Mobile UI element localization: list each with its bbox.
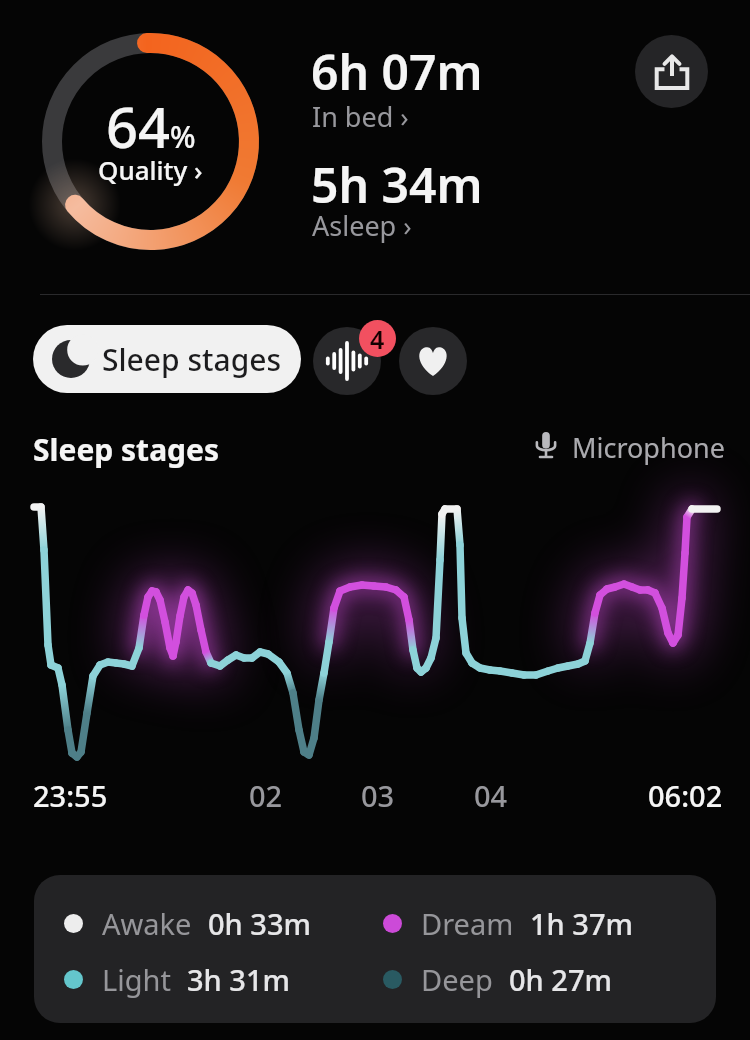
staticText: 64% [106,88,196,164]
staticText: 03 [361,776,395,815]
staticText: Sleep stages [33,429,220,470]
button[interactable]: Sleep stages [33,325,301,393]
staticText: 6h 07m [311,39,483,104]
staticText: Light [102,960,171,999]
staticText: 5h 34m [311,152,483,217]
staticText: 06:02 [648,776,723,815]
staticText: Deep [421,960,493,999]
button[interactable]: Light [64,959,290,999]
staticText: 23:55 [33,776,108,815]
button[interactable]: Deep [383,959,612,999]
button[interactable]: Awake [64,903,311,943]
button[interactable]: Dream [383,903,633,943]
staticText: Quality › [98,152,203,187]
staticText: 1h 37m [530,904,633,943]
staticText: Dream [421,904,514,943]
staticText: 4 [370,322,385,356]
button[interactable] [313,327,381,395]
staticText: Awake [102,904,192,943]
staticText: In bed › [312,98,409,135]
staticText: 04 [474,776,508,815]
button[interactable]: 6h 07m [311,30,631,250]
staticText: Sleep stages [102,339,282,380]
button[interactable] [399,327,467,395]
staticText: 0h 33m [208,904,311,943]
button[interactable]: 64% [40,31,261,252]
button[interactable]: Microphone [534,429,725,466]
staticText: 0h 27m [509,960,612,999]
button[interactable] [635,35,708,108]
staticText: 02 [249,776,283,815]
staticText: 3h 31m [187,960,290,999]
staticText: Asleep › [312,207,412,244]
staticText: Microphone [572,429,725,466]
